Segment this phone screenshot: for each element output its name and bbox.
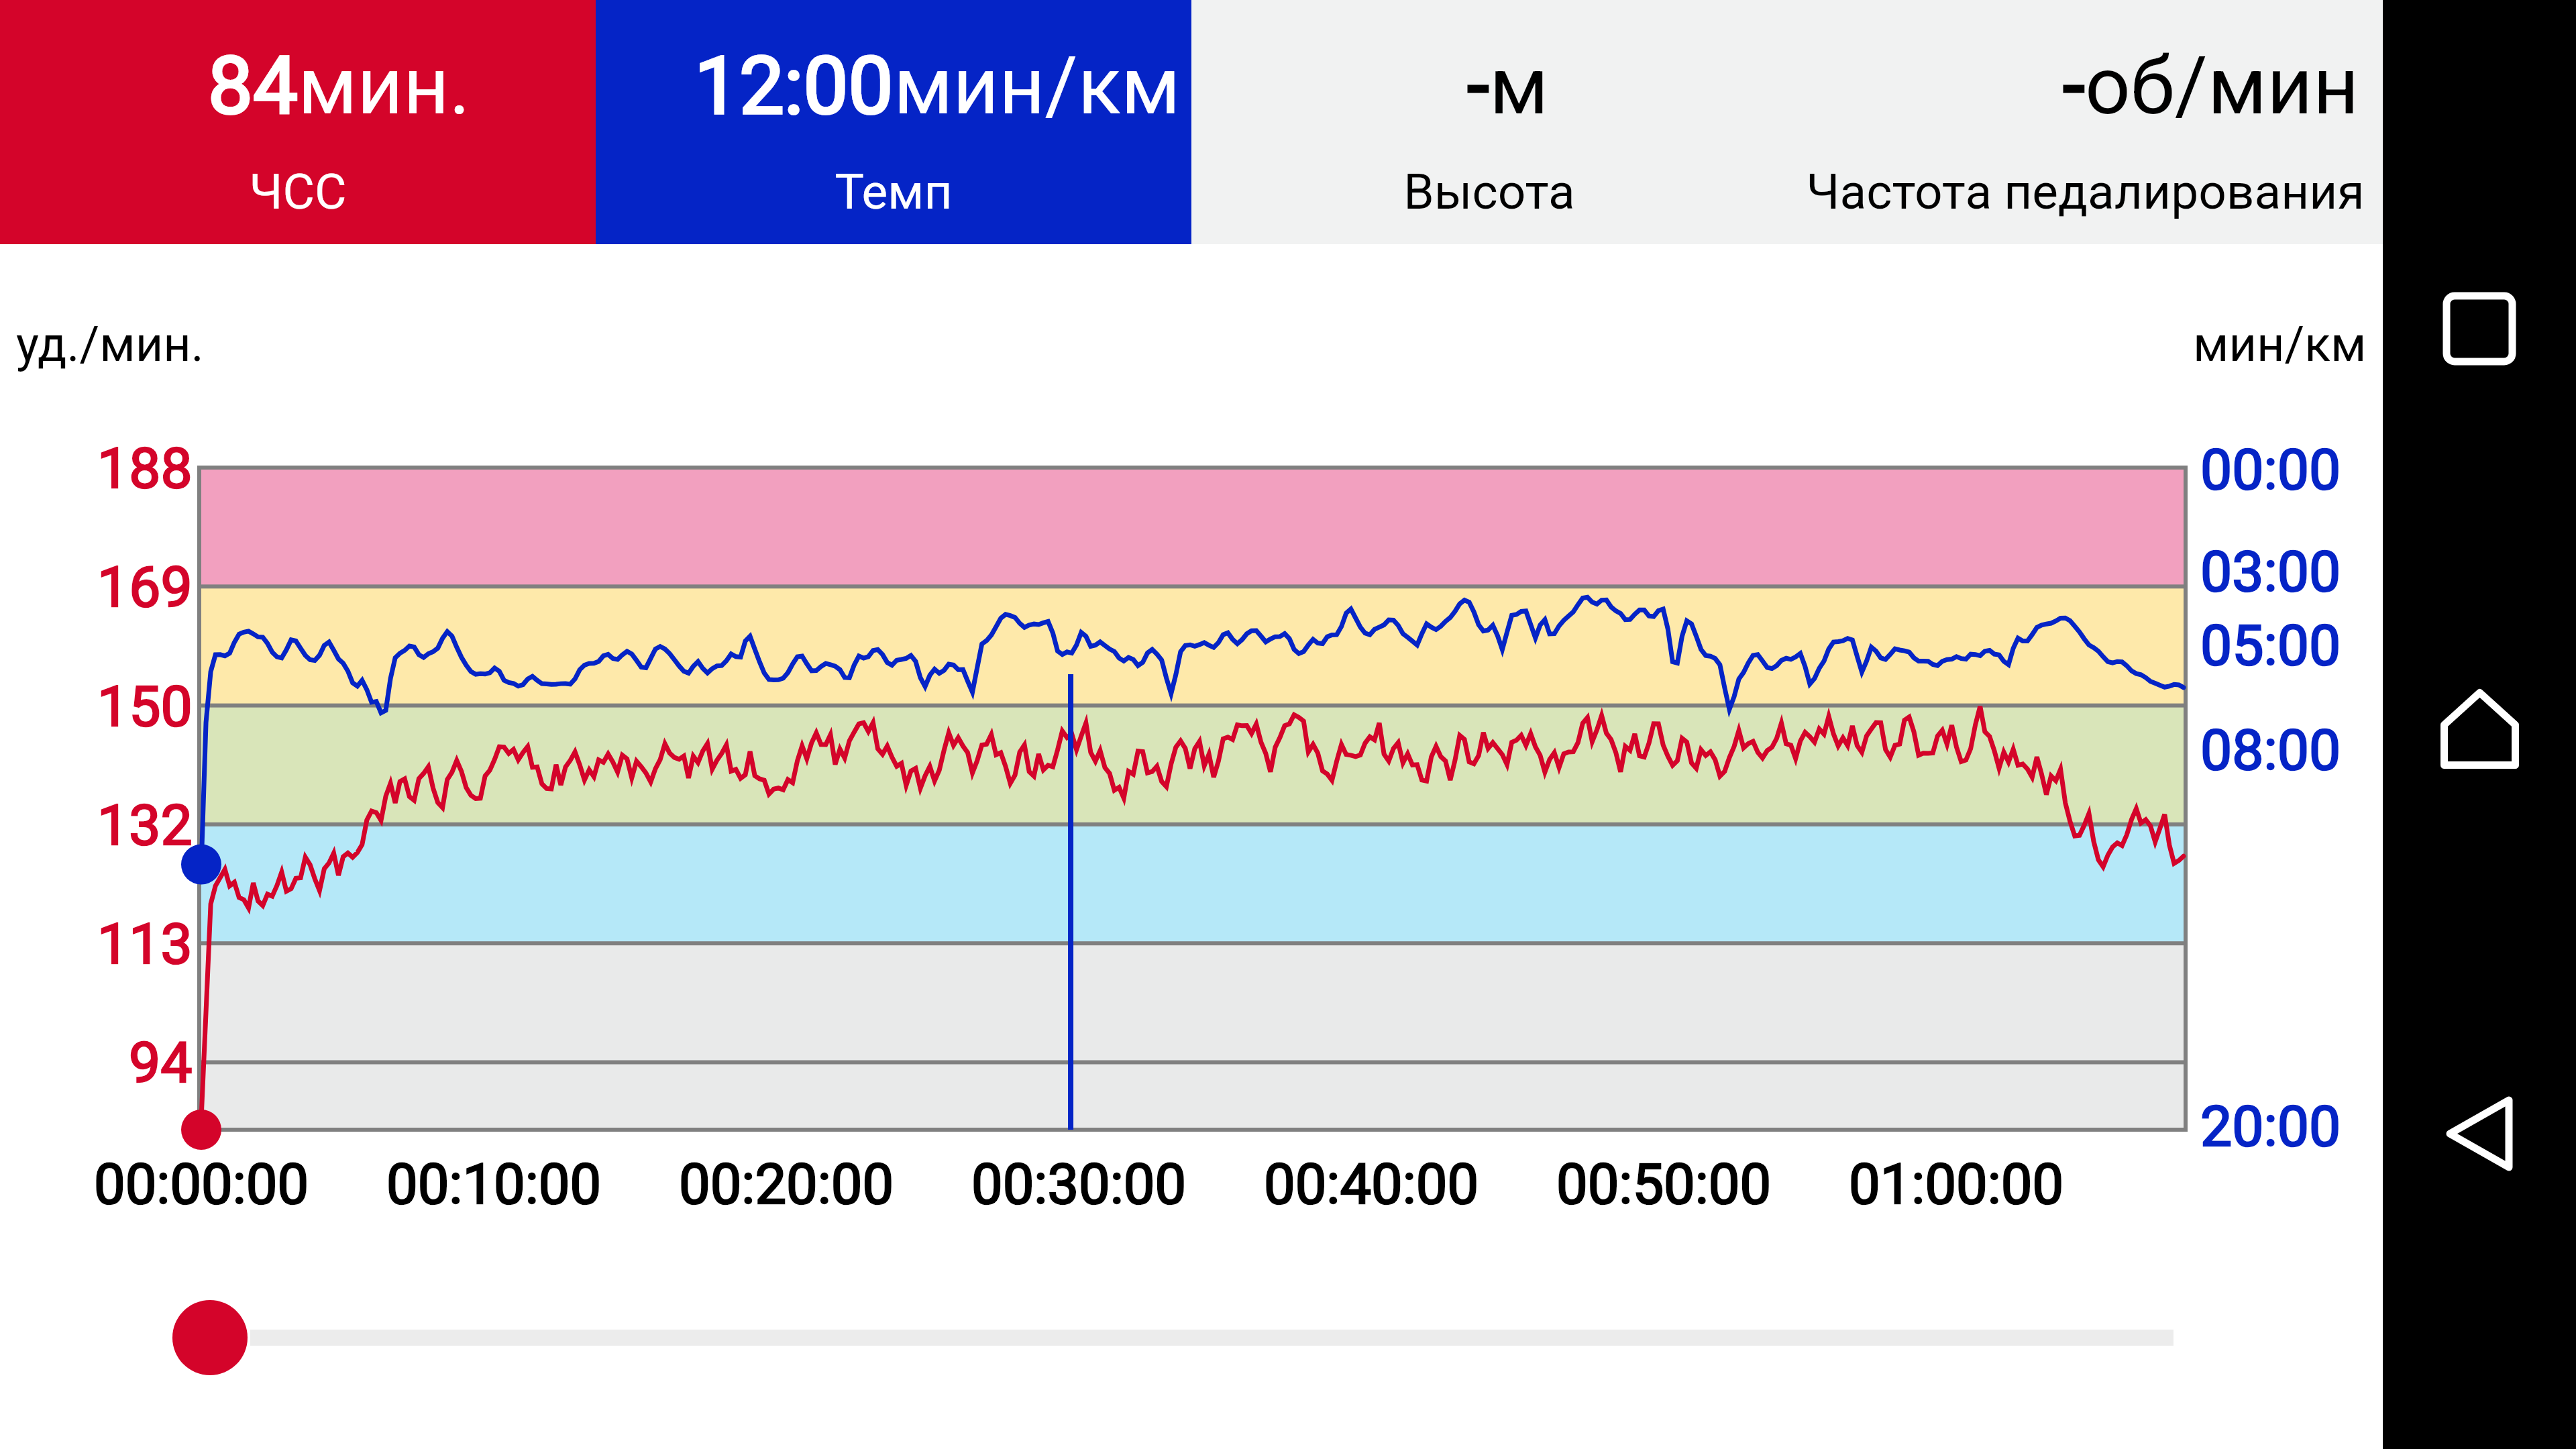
button[interactable]: Back: [2383, 973, 2576, 1295]
button[interactable]: [1191, 0, 1787, 244]
staticText: мин.: [298, 40, 470, 133]
staticText: м: [1489, 40, 1549, 133]
staticText: 20:00: [2200, 1093, 2341, 1159]
staticText: Темп: [835, 163, 953, 221]
staticText: Высота: [1403, 163, 1575, 221]
staticText: об/мин: [2085, 40, 2359, 133]
staticText: -: [2063, 40, 2085, 133]
staticText: 113: [97, 911, 193, 977]
staticText: 132: [97, 792, 193, 858]
staticText: уд./мин.: [16, 316, 204, 372]
staticText: 00:20:00: [679, 1152, 894, 1217]
staticText: 00:00:00: [94, 1152, 309, 1217]
staticText: 08:00: [2200, 717, 2341, 783]
button[interactable]: [1787, 0, 2383, 244]
staticText: 150: [97, 674, 193, 739]
staticText: 169: [97, 554, 193, 620]
staticText: 03:00: [2200, 539, 2341, 604]
button[interactable]: Scrub position: [168, 1295, 255, 1382]
button[interactable]: [0, 0, 596, 244]
staticText: 00:30:00: [971, 1152, 1187, 1217]
staticText: 84: [208, 40, 298, 133]
staticText: мин/км: [894, 40, 1181, 133]
staticText: Частота педалирования: [1806, 163, 2365, 221]
button[interactable]: Home: [2383, 568, 2576, 890]
staticText: 188: [97, 435, 193, 501]
staticText: 05:00: [2200, 612, 2341, 678]
staticText: 94: [129, 1030, 193, 1095]
staticText: 00:50:00: [1556, 1152, 1772, 1217]
staticText: -: [1467, 40, 1489, 133]
staticText: 00:10:00: [386, 1152, 602, 1217]
staticText: 00:00: [2200, 437, 2341, 502]
staticText: 12:00: [694, 40, 894, 133]
button[interactable]: Recents: [2383, 168, 2576, 490]
staticText: мин/км: [2193, 316, 2367, 372]
button[interactable]: [596, 0, 1191, 244]
staticText: 01:00:00: [1849, 1152, 2064, 1217]
staticText: ЧСС: [249, 163, 347, 221]
staticText: 00:40:00: [1264, 1152, 1479, 1217]
